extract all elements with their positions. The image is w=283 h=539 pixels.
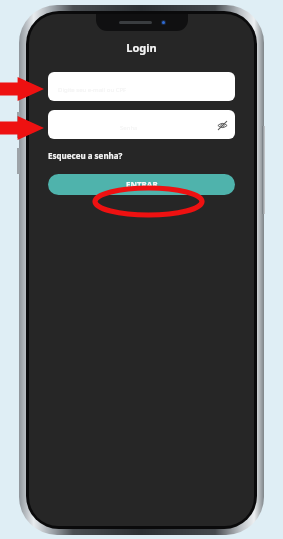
- button[interactable]: Mostrar senha: [214, 117, 230, 133]
- staticText: Login: [29, 40, 254, 55]
- staticText: Senha: [120, 124, 138, 132]
- button[interactable]: Esqueceu a senha?: [48, 150, 123, 161]
- button[interactable]: ENTRAR: [48, 174, 235, 195]
- staticText: ENTRAR: [126, 179, 158, 190]
- staticText: Esqueceu a senha?: [48, 150, 123, 161]
- button[interactable]: Senha: [48, 110, 235, 139]
- staticText: Digite seu e-mail ou CPF: [58, 86, 127, 94]
- button[interactable]: Digite seu e-mail ou CPF: [48, 72, 235, 101]
